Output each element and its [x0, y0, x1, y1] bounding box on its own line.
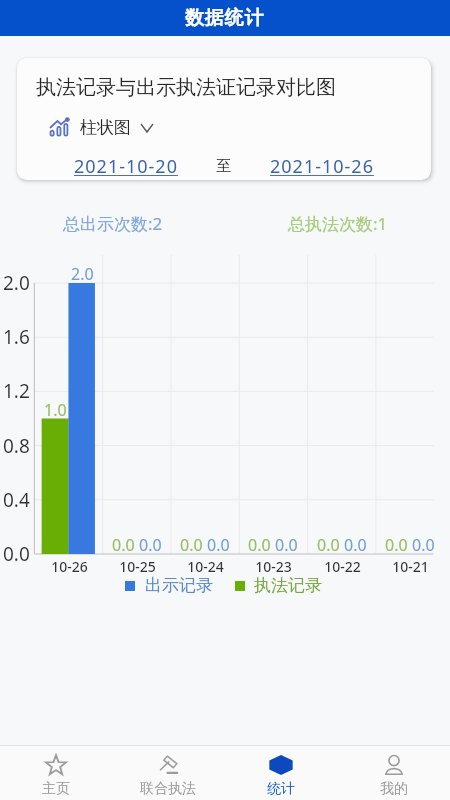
- staticText: 数据统计: [185, 6, 265, 30]
- staticText: 10-24: [187, 557, 224, 576]
- staticText: 10-21: [392, 557, 429, 576]
- button[interactable]: 主页: [0, 746, 112, 800]
- staticText: 2.0: [71, 263, 94, 285]
- staticText: 0.0: [3, 541, 30, 567]
- staticText: 1.2: [3, 378, 30, 404]
- button[interactable]: 联合执法: [112, 746, 224, 800]
- staticText: 我的: [380, 780, 408, 795]
- staticText: 执法记录: [254, 575, 322, 596]
- staticText: 2.0: [3, 270, 30, 296]
- staticText: 主页: [42, 780, 70, 795]
- staticText: 总执法次数:1: [288, 212, 388, 235]
- button[interactable]: 统计: [224, 746, 337, 800]
- button[interactable]: 我的: [337, 746, 450, 800]
- other: 统计: [270, 754, 292, 776]
- button[interactable]: 柱状图: [49, 117, 153, 138]
- staticText: 0.4: [3, 487, 30, 513]
- button[interactable]: 2021-10-26: [270, 154, 374, 179]
- staticText: 执法记录与出示执法证记录对比图: [36, 75, 336, 100]
- staticText: 柱状图: [80, 117, 131, 138]
- button[interactable]: 2021-10-20: [74, 154, 178, 179]
- staticText: 0.8: [3, 433, 30, 459]
- staticText: 0.0: [248, 534, 271, 556]
- staticText: 10-22: [324, 557, 361, 576]
- staticText: 0.0: [207, 534, 230, 556]
- staticText: 1.0: [44, 399, 67, 421]
- staticText: 1.6: [3, 324, 30, 350]
- staticText: 10-25: [119, 557, 156, 576]
- staticText: 0.0: [344, 534, 367, 556]
- staticText: 10-26: [51, 557, 88, 576]
- staticText: 0.0: [180, 534, 203, 556]
- staticText: 0.0: [412, 534, 435, 556]
- staticText: 至: [216, 157, 231, 176]
- staticText: 总出示次数:2: [63, 212, 163, 235]
- staticText: 0.0: [112, 534, 135, 556]
- staticText: 0.0: [275, 534, 298, 556]
- staticText: 出示记录: [145, 575, 213, 596]
- staticText: 0.0: [317, 534, 340, 556]
- staticText: 联合执法: [140, 780, 196, 795]
- staticText: 10-23: [255, 557, 292, 576]
- staticText: 0.0: [139, 534, 162, 556]
- staticText: 0.0: [385, 534, 408, 556]
- staticText: 统计: [267, 780, 295, 795]
